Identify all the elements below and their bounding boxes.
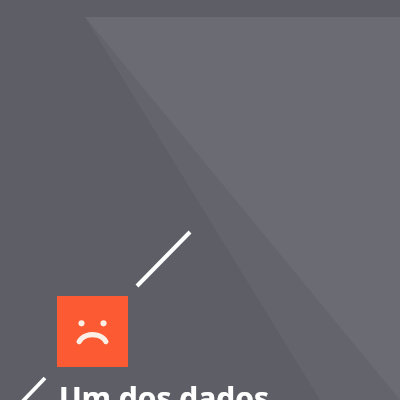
button[interactable]	[0, 0, 400, 400]
button[interactable]: Erro ao carregar dados	[0, 0, 400, 400]
